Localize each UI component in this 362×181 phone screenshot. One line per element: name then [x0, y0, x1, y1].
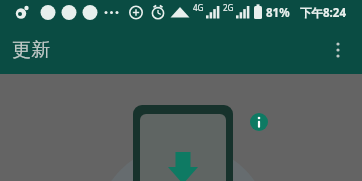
- staticText: 下午8:24: [300, 5, 346, 21]
- staticText: 81%: [266, 5, 290, 21]
- button[interactable]: More options: [322, 34, 354, 66]
- staticText: 4G: [193, 2, 204, 13]
- button[interactable]: Info: [250, 113, 268, 131]
- staticText: 更新: [12, 38, 50, 62]
- staticText: 2G: [223, 2, 234, 13]
